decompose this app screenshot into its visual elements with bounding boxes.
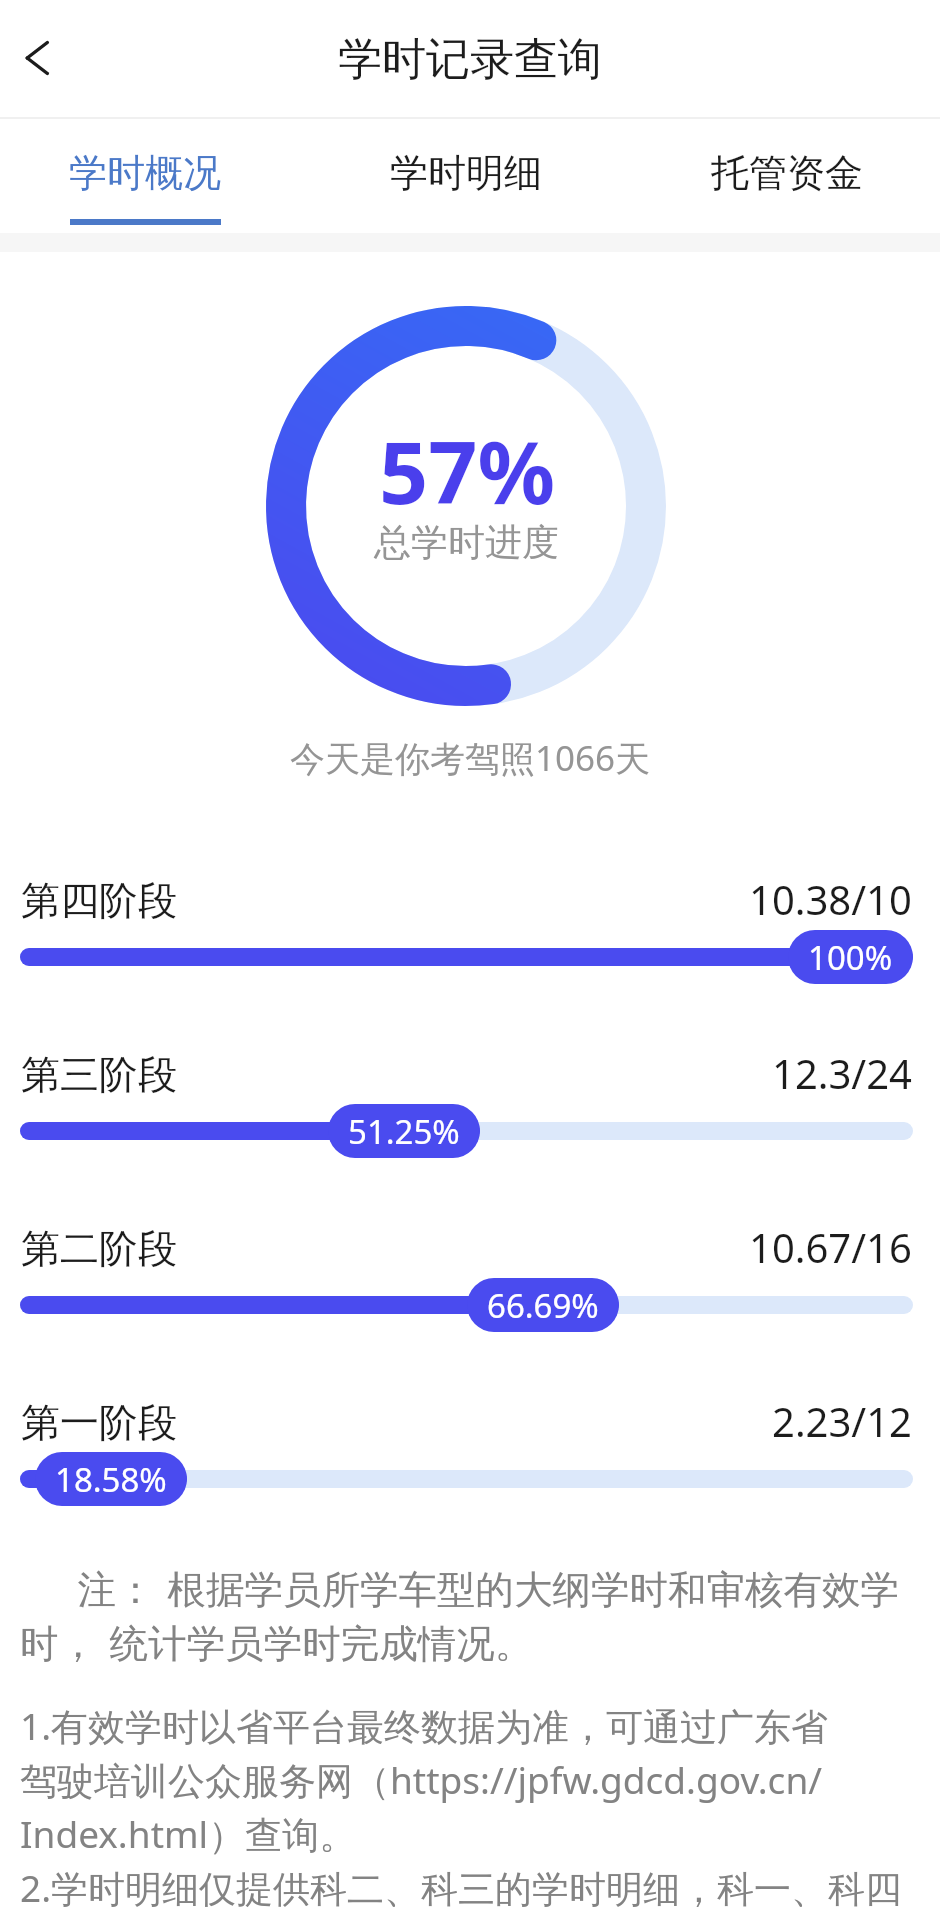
button[interactable]: 第一阶段 (0, 1398, 940, 1452)
staticText: 57% (379, 412, 555, 529)
staticText: 第三阶段 (21, 1050, 177, 1099)
button[interactable]: 第三阶段 (0, 1050, 940, 1104)
button[interactable]: 第四阶段 (0, 876, 940, 930)
staticText: 66.69% (487, 1283, 599, 1328)
button[interactable]: 学时概况 (30, 119, 260, 233)
staticText: 51.25% (348, 1109, 460, 1154)
staticText: 18.58% (55, 1457, 167, 1502)
button[interactable]: 托管资金 (672, 119, 902, 233)
staticText: 100% (808, 935, 893, 980)
button[interactable]: 第二阶段 (0, 1224, 940, 1278)
button[interactable]: 学时明细 (351, 119, 581, 233)
staticText: 总学时进度 (374, 519, 559, 566)
staticText: 托管资金 (711, 149, 863, 197)
staticText: 10.67/16 (749, 1220, 912, 1274)
staticText: 2.23/12 (772, 1394, 912, 1448)
staticText: 学时明细 (390, 149, 542, 197)
staticText: 今天是你考驾照1066天 (290, 734, 651, 782)
staticText: 第四阶段 (21, 876, 177, 925)
staticText: 第一阶段 (21, 1398, 177, 1447)
staticText: 学时记录查询 (338, 32, 602, 87)
staticText: 注： 根据学员所学车型的大纲学时和审核有效学 时， 统计学员学时完成情况。 (20, 1562, 900, 1668)
staticText: 1.有效学时以省平台最终数据为准，可通过广东省 驾驶培训公众服务网（https:… (20, 1700, 903, 1913)
staticText: 学时概况 (69, 149, 221, 197)
staticText: 第二阶段 (21, 1224, 177, 1273)
staticText: 10.38/10 (749, 872, 912, 926)
button[interactable]: Back (12, 32, 64, 84)
staticText: 12.3/24 (772, 1046, 912, 1100)
